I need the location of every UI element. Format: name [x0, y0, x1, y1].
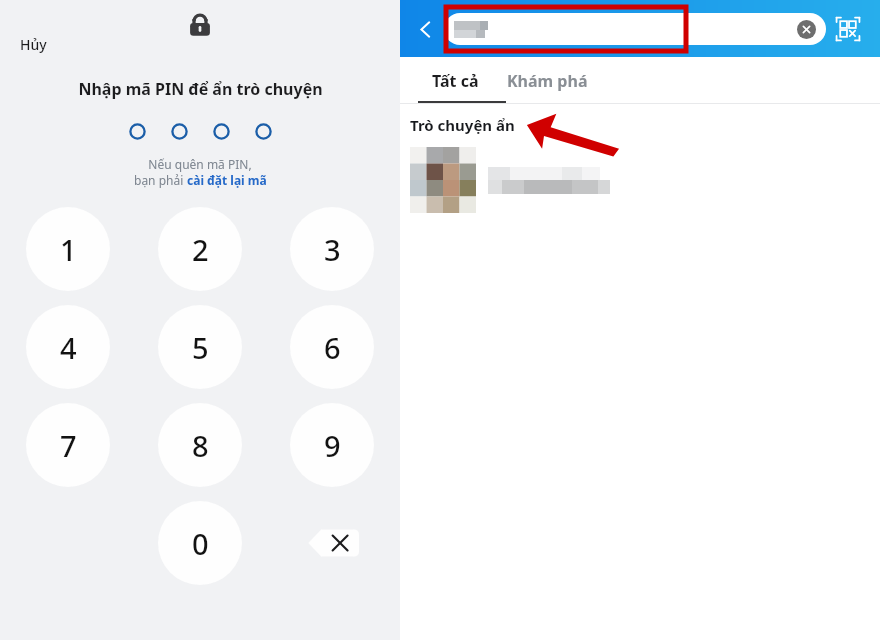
staticText: 9 — [324, 426, 341, 465]
staticText: Hủy — [20, 35, 47, 54]
button[interactable]: 2 — [158, 207, 242, 291]
button[interactable] — [400, 147, 880, 213]
button[interactable]: Tất cả — [418, 57, 493, 104]
button[interactable]: 4 — [26, 305, 110, 389]
button[interactable]: 5 — [158, 305, 242, 389]
staticText: Nhập mã PIN để ẩn trò chuyện — [78, 78, 323, 100]
button[interactable]: 6 — [290, 305, 374, 389]
button[interactable]: 8 — [158, 403, 242, 487]
button[interactable]: cài đặt lại mã — [187, 172, 267, 188]
button[interactable]: 1 — [26, 207, 110, 291]
staticText: 3 — [324, 230, 341, 269]
button[interactable]: Delete — [290, 501, 374, 585]
button[interactable]: Back — [406, 10, 444, 48]
staticText: 1 — [60, 230, 77, 269]
button[interactable]: 0 — [158, 501, 242, 585]
staticText: cài đặt lại mã — [187, 172, 267, 188]
staticText: 5 — [192, 328, 209, 367]
staticText: Trò chuyện ẩn — [410, 115, 515, 135]
button[interactable]: Khám phá — [493, 57, 602, 104]
button[interactable]: 7 — [26, 403, 110, 487]
staticText: 6 — [324, 328, 341, 367]
button[interactable]: Clear — [797, 20, 816, 39]
staticText: Tất cả — [432, 70, 479, 92]
staticText: bạn phải — [134, 172, 187, 188]
button[interactable]: Hủy — [12, 32, 55, 57]
staticText: 7 — [60, 426, 77, 465]
staticText: 2 — [192, 230, 209, 269]
button[interactable]: 9 — [290, 403, 374, 487]
button[interactable]: Scan QR code — [826, 7, 870, 51]
staticText: Nếu quên mã PIN, — [148, 156, 252, 172]
staticText: 8 — [192, 426, 209, 465]
staticText: 4 — [60, 328, 77, 367]
button[interactable]: Clear — [444, 13, 826, 45]
staticText: 0 — [192, 524, 209, 563]
button[interactable]: 3 — [290, 207, 374, 291]
staticText: Khám phá — [507, 70, 588, 92]
